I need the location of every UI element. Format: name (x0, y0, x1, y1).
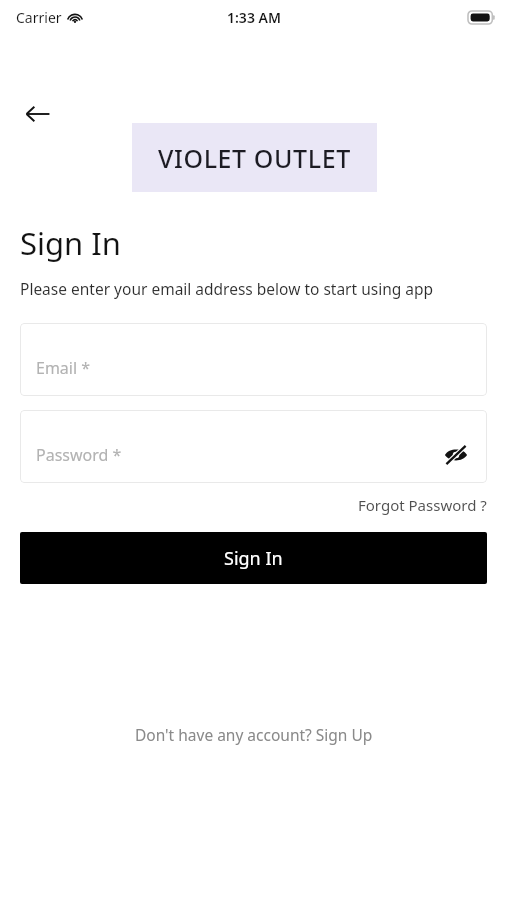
button[interactable]: Back (18, 94, 58, 134)
staticText: Don't have any account? Sign Up (135, 724, 373, 745)
button[interactable]: Email * (20, 323, 487, 396)
button[interactable]: VIOLET OUTLET (132, 123, 377, 192)
staticText: Forgot Password ? (358, 495, 487, 515)
staticText: Carrier (16, 8, 62, 27)
staticText: Password * (36, 444, 122, 466)
staticText: Please enter your email address below to… (20, 278, 487, 299)
staticText: Sign In (224, 546, 283, 571)
staticText: VIOLET OUTLET (158, 141, 351, 175)
button[interactable]: Password * (20, 410, 487, 483)
staticText: 1:33 AM (227, 8, 281, 27)
button[interactable]: Sign In (20, 532, 487, 584)
button[interactable]: Don't have any account? Sign Up (123, 718, 385, 751)
staticText: Email * (36, 357, 91, 379)
button[interactable]: Show password (441, 440, 471, 470)
staticText: Sign In (20, 222, 121, 264)
button[interactable]: Forgot Password ? (358, 491, 487, 519)
